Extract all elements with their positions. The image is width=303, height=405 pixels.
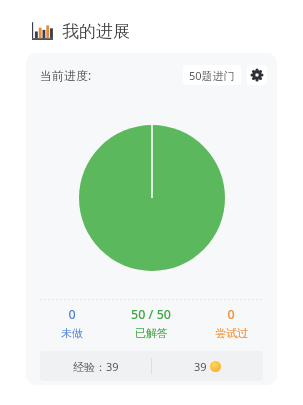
staticText: 当前进度: [40, 67, 92, 83]
staticText: 0 [227, 306, 235, 323]
button[interactable]: 0 [32, 300, 111, 346]
button[interactable]: 39 [152, 351, 263, 381]
staticText: 已解答 [135, 326, 168, 340]
button[interactable]: Settings [247, 65, 267, 85]
staticText: 经验：39 [73, 359, 119, 374]
button[interactable]: 50题进门 [183, 65, 241, 85]
staticText: 50题进门 [189, 68, 235, 83]
other: Progress chart [32, 21, 53, 41]
staticText: 0 [68, 306, 76, 323]
staticText: 39 [194, 359, 207, 374]
button[interactable]: 50 / 50 [111, 300, 191, 346]
staticText: 我的进展 [62, 21, 130, 42]
staticText: 尝试过 [215, 326, 248, 340]
button[interactable]: 经验：39 [40, 351, 151, 381]
staticText: 50 / 50 [131, 306, 171, 323]
button[interactable]: 0 [191, 300, 271, 346]
staticText: 未做 [61, 326, 83, 340]
